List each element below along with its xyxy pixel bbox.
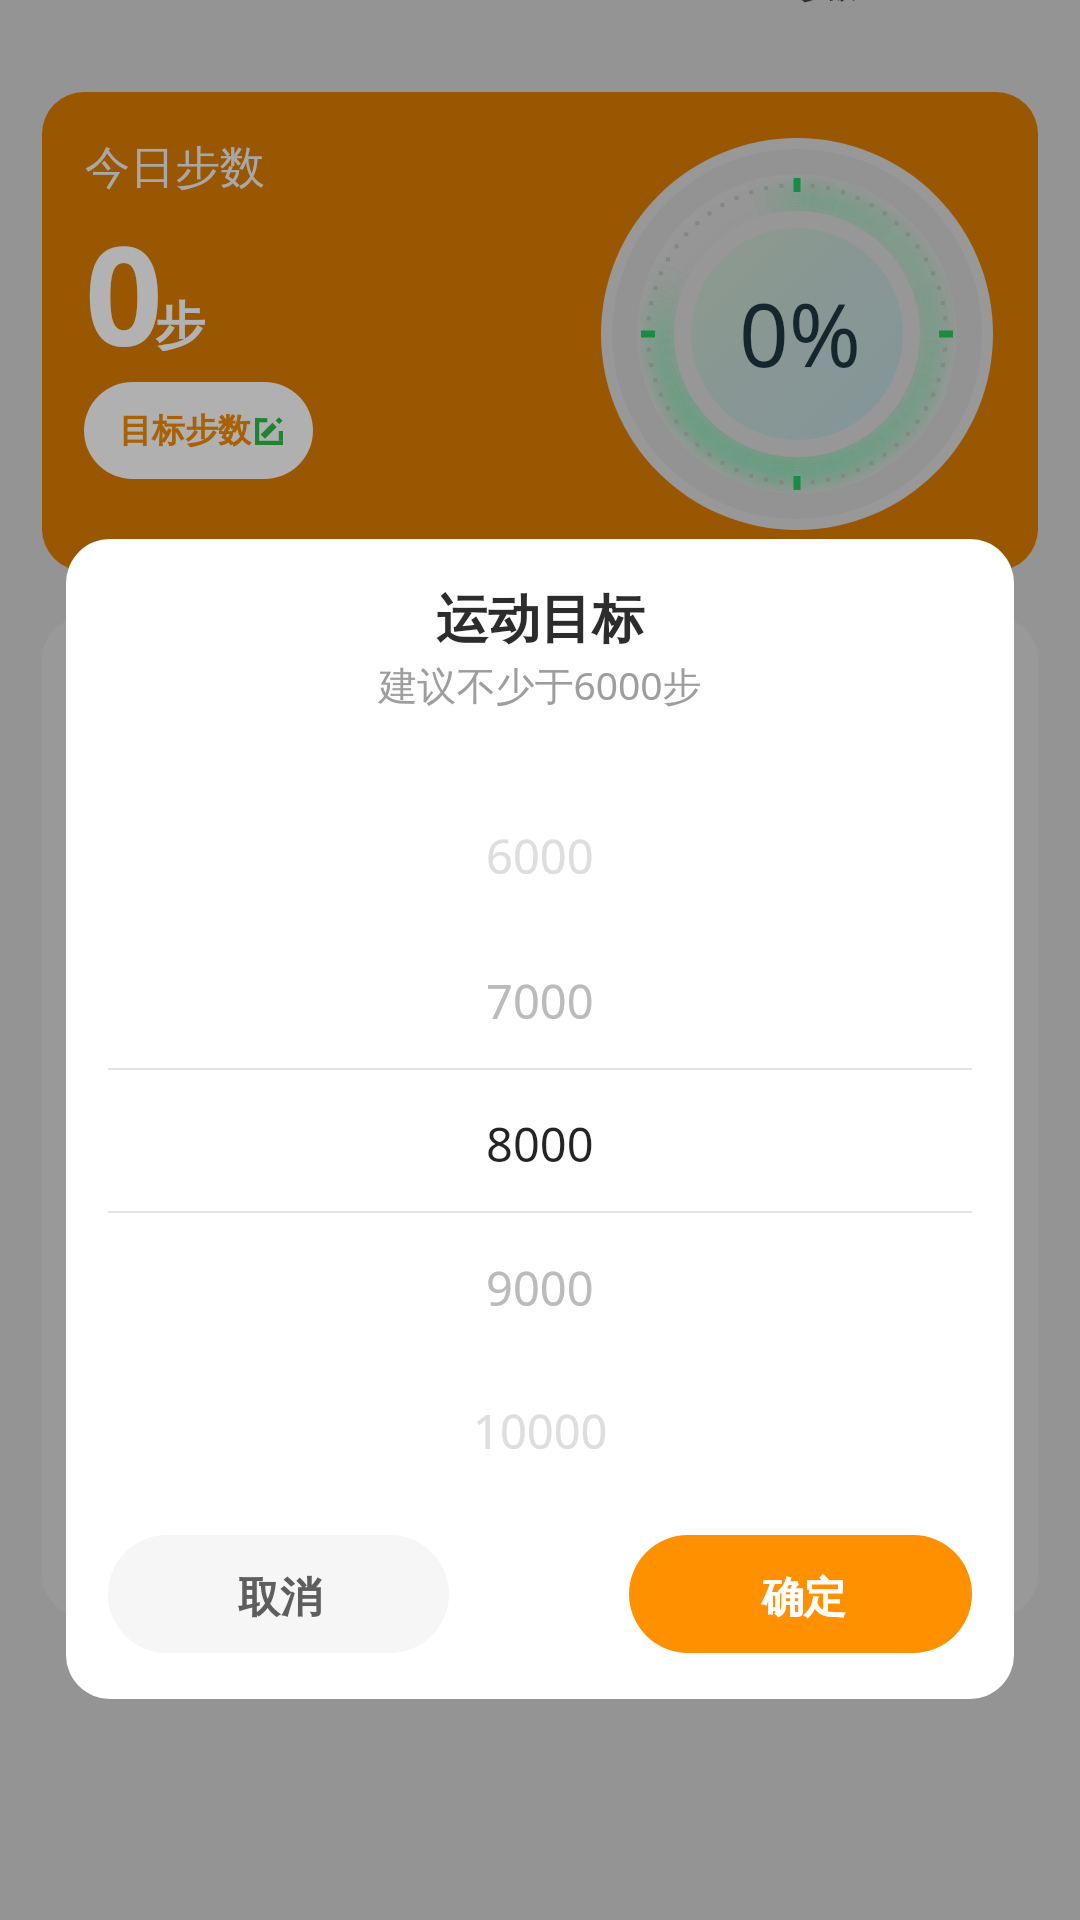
staticText: 6000 — [486, 824, 594, 888]
button[interactable]: 9000 — [66, 1216, 1014, 1359]
button[interactable]: 6000 — [66, 784, 1014, 927]
staticText: 今日步数 — [85, 140, 265, 197]
button[interactable]: 确定 — [629, 1535, 972, 1653]
staticText: 10000 — [473, 1399, 608, 1463]
button[interactable]: 取消 — [108, 1535, 449, 1653]
staticText: 步数 — [800, 0, 856, 6]
button[interactable]: 8000 — [66, 1072, 1014, 1215]
staticText: 取消 — [238, 1572, 322, 1625]
button[interactable]: 目标步数 — [84, 382, 313, 479]
staticText: 0% — [739, 274, 862, 392]
button[interactable]: 10000 — [66, 1359, 1014, 1502]
staticText: 建议不少于6000步 — [66, 658, 1014, 711]
staticText: 0 — [85, 201, 163, 386]
button[interactable]: 7000 — [66, 929, 1014, 1072]
staticText: 8000 — [486, 1112, 594, 1176]
staticText: 确定 — [762, 1572, 846, 1625]
staticText: 运动目标 — [66, 587, 1014, 653]
other: Edit goal — [255, 417, 283, 445]
staticText: 步 — [155, 295, 205, 358]
staticText: 目标步数 — [119, 410, 251, 452]
staticText: 9000 — [486, 1256, 594, 1320]
staticText: 7000 — [486, 969, 594, 1033]
